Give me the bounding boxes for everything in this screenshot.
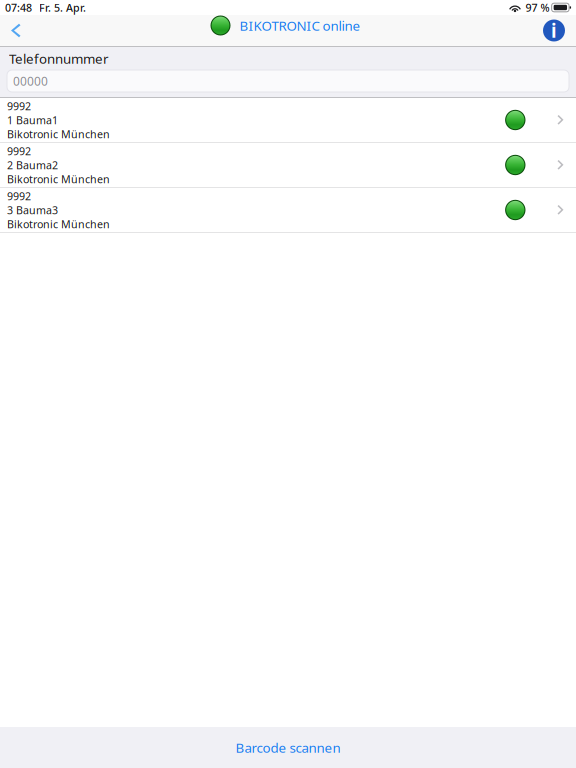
staticText: Fr. 5. Apr. [39, 0, 86, 15]
staticText: 00000 [13, 73, 48, 89]
button[interactable]: 9992 [0, 98, 576, 143]
staticText: 1 Bauma1 [7, 113, 58, 127]
staticText: 3 Bauma3 [7, 203, 58, 217]
staticText: Bikotronic München [7, 217, 110, 231]
button[interactable]: 9992 [0, 143, 576, 188]
staticText: 2 Bauma2 [7, 158, 58, 172]
staticText: i [551, 18, 557, 43]
button[interactable]: 00000 [0, 70, 576, 92]
staticText: 9992 [7, 144, 31, 158]
staticText: 9992 [7, 189, 31, 203]
button[interactable]: Info [540, 15, 576, 46]
staticText: Bikotronic München [7, 172, 110, 186]
button[interactable]: Barcode scannen [0, 727, 576, 768]
button[interactable]: 9992 [0, 188, 576, 233]
staticText: Barcode scannen [235, 739, 340, 756]
staticText: 9992 [7, 99, 31, 113]
staticText: Bikotronic München [7, 127, 110, 141]
button[interactable]: Back [0, 15, 35, 46]
staticText: 07:48 [5, 0, 32, 15]
staticText: BIKOTRONIC online [239, 17, 360, 34]
staticText: 97 % [525, 0, 549, 15]
staticText: Telefonnummer [9, 50, 109, 67]
